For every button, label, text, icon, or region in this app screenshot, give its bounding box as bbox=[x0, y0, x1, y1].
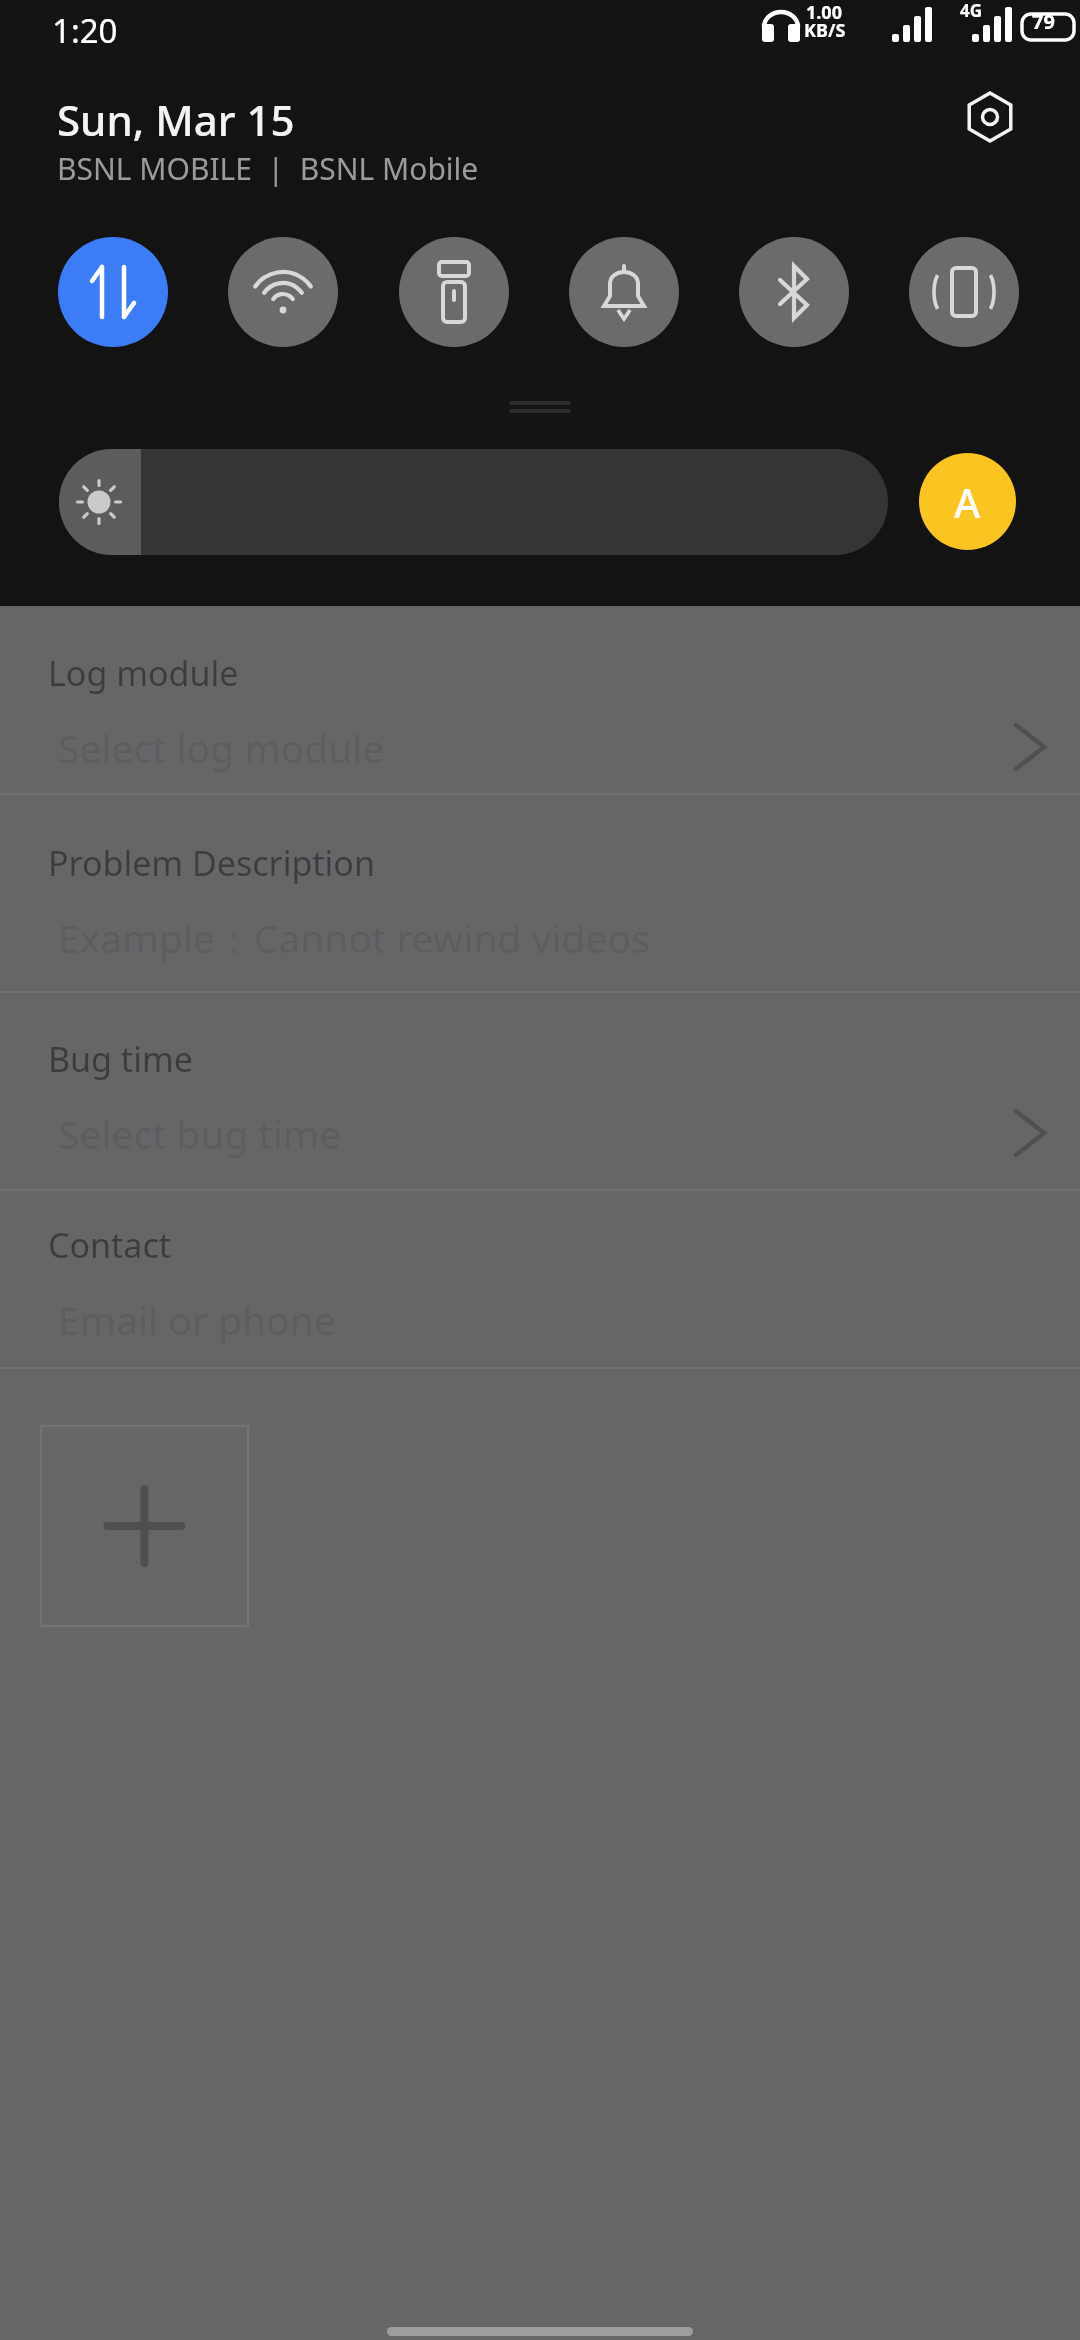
staticText: Log module bbox=[48, 650, 239, 696]
staticText: 1.00 bbox=[806, 0, 842, 25]
button[interactable] bbox=[0, 618, 1080, 793]
button[interactable]: Auto brightness bbox=[919, 453, 1016, 550]
staticText: Bug time bbox=[48, 1036, 193, 1082]
button[interactable]: Flashlight bbox=[399, 237, 509, 347]
button[interactable]: Mobile data bbox=[58, 237, 168, 347]
staticText: 4G bbox=[960, 0, 983, 22]
staticText: A bbox=[954, 475, 981, 529]
button[interactable]: Settings bbox=[955, 82, 1025, 152]
button[interactable]: Vibrate bbox=[909, 237, 1019, 347]
button[interactable] bbox=[0, 1004, 1080, 1189]
staticText: Select log module bbox=[58, 721, 385, 774]
button[interactable]: Wi-Fi bbox=[228, 237, 338, 347]
button[interactable]: Add attachment bbox=[41, 1426, 248, 1626]
staticText: 1:20 bbox=[52, 8, 118, 53]
staticText: 79 bbox=[1032, 8, 1055, 35]
button[interactable] bbox=[0, 808, 1080, 991]
staticText: Sun, Mar 15 bbox=[57, 91, 295, 148]
button[interactable]: Bluetooth bbox=[739, 237, 849, 347]
staticText: KB/S bbox=[804, 18, 846, 43]
staticText: Problem Description bbox=[48, 840, 375, 886]
staticText: Contact bbox=[48, 1222, 172, 1268]
staticText: BSNL MOBILE | BSNL Mobile bbox=[57, 148, 479, 189]
button[interactable]: Do not disturb bbox=[569, 237, 679, 347]
button[interactable]: Brightness bbox=[59, 449, 888, 555]
